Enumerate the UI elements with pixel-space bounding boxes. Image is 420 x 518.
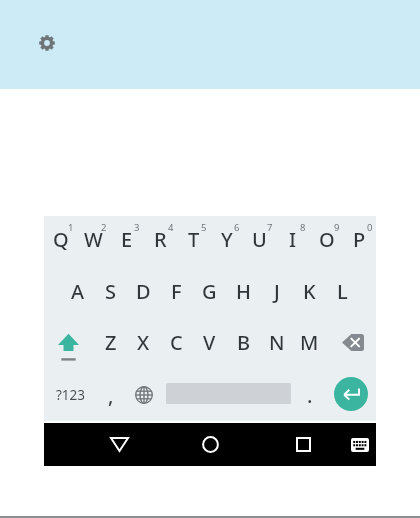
staticText: S bbox=[105, 278, 116, 305]
button[interactable]: Recent apps bbox=[279, 423, 327, 466]
staticText: 0 bbox=[367, 221, 373, 234]
button[interactable]: M bbox=[293, 319, 326, 371]
button[interactable]: R bbox=[144, 216, 177, 268]
button[interactable]: Change language bbox=[127, 371, 160, 423]
button[interactable]: X bbox=[127, 319, 160, 371]
button[interactable]: , bbox=[94, 371, 127, 423]
button[interactable]: T bbox=[177, 216, 210, 268]
button[interactable]: Shift bbox=[44, 319, 94, 371]
staticText: F bbox=[171, 278, 182, 305]
button[interactable]: W bbox=[77, 216, 110, 268]
button[interactable]: S bbox=[94, 268, 127, 320]
button[interactable]: A bbox=[61, 268, 94, 320]
staticText: K bbox=[303, 278, 316, 305]
button[interactable]: I bbox=[276, 216, 309, 268]
staticText: Z bbox=[105, 329, 117, 356]
staticText: 7 bbox=[267, 221, 273, 234]
button[interactable]: Z bbox=[94, 319, 127, 371]
staticText: N bbox=[269, 329, 285, 356]
button[interactable]: Space bbox=[160, 371, 293, 423]
button[interactable]: K bbox=[293, 268, 326, 320]
staticText: B bbox=[237, 329, 251, 356]
button[interactable]: P bbox=[343, 216, 376, 268]
button[interactable]: C bbox=[160, 319, 193, 371]
button[interactable]: Y bbox=[210, 216, 243, 268]
button[interactable]: E bbox=[110, 216, 143, 268]
button[interactable]: O bbox=[310, 216, 343, 268]
staticText: Q bbox=[53, 226, 69, 253]
button[interactable]: Settings bbox=[34, 30, 59, 55]
staticText: 5 bbox=[201, 221, 207, 234]
staticText: P bbox=[353, 226, 366, 253]
staticText: U bbox=[252, 226, 267, 253]
staticText: V bbox=[203, 329, 216, 356]
staticText: 1 bbox=[68, 221, 74, 234]
button[interactable]: V bbox=[193, 319, 226, 371]
button[interactable]: Enter bbox=[326, 371, 376, 423]
button[interactable]: . bbox=[293, 371, 326, 423]
staticText: , bbox=[108, 382, 114, 409]
staticText: O bbox=[319, 226, 335, 253]
staticText: X bbox=[137, 329, 150, 356]
staticText: J bbox=[274, 278, 280, 305]
staticText: G bbox=[202, 278, 217, 305]
staticText: A bbox=[71, 278, 85, 305]
staticText: 8 bbox=[300, 221, 306, 234]
button[interactable]: D bbox=[127, 268, 160, 320]
staticText: W bbox=[84, 226, 103, 253]
button[interactable]: H bbox=[227, 268, 260, 320]
button[interactable]: Q bbox=[44, 216, 77, 268]
button[interactable]: N bbox=[260, 319, 293, 371]
staticText: 3 bbox=[134, 221, 140, 234]
staticText: E bbox=[121, 226, 133, 253]
staticText: Y bbox=[221, 226, 233, 253]
button[interactable]: J bbox=[260, 268, 293, 320]
staticText: 6 bbox=[234, 221, 240, 234]
button[interactable]: F bbox=[160, 268, 193, 320]
button[interactable]: B bbox=[227, 319, 260, 371]
staticText: ?123 bbox=[56, 386, 86, 404]
staticText: D bbox=[136, 278, 151, 305]
staticText: T bbox=[188, 226, 200, 253]
button[interactable]: G bbox=[193, 268, 226, 320]
staticText: M bbox=[300, 329, 319, 356]
staticText: C bbox=[170, 329, 183, 356]
staticText: 4 bbox=[168, 221, 174, 234]
button[interactable]: Home bbox=[186, 423, 234, 466]
button[interactable]: L bbox=[326, 268, 359, 320]
button[interactable]: Back bbox=[95, 423, 143, 466]
button[interactable]: U bbox=[243, 216, 276, 268]
staticText: H bbox=[236, 278, 251, 305]
button[interactable]: Backspace bbox=[326, 319, 376, 371]
button[interactable]: Switch keyboard bbox=[336, 423, 384, 466]
staticText: I bbox=[289, 226, 297, 253]
button[interactable]: ?123 bbox=[44, 371, 94, 423]
staticText: . bbox=[307, 382, 313, 409]
staticText: 9 bbox=[334, 221, 340, 234]
staticText: 2 bbox=[101, 221, 107, 234]
staticText: L bbox=[337, 278, 348, 305]
staticText: R bbox=[154, 226, 167, 253]
